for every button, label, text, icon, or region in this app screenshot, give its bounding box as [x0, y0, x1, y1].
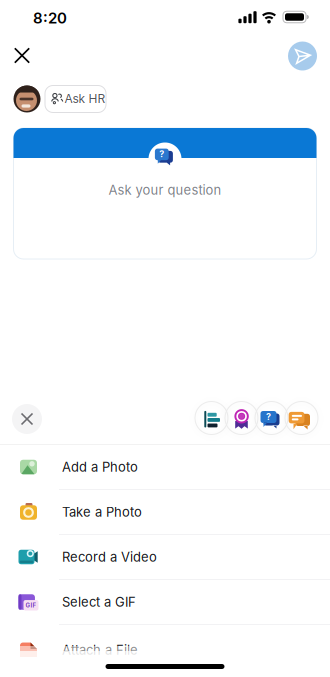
staticText: Take a Photo	[62, 504, 142, 520]
button[interactable]: Ask HR	[45, 85, 106, 112]
button[interactable]: Send	[288, 41, 317, 70]
button[interactable]: Record a Video	[0, 534, 330, 579]
staticText: GIF	[25, 602, 36, 609]
staticText: Ask HR	[64, 92, 105, 106]
staticText: Ask your question	[108, 182, 221, 198]
button[interactable]: Add a Photo	[0, 444, 330, 489]
staticText: ?	[159, 149, 164, 159]
button[interactable]: Ask a question	[255, 401, 288, 434]
button[interactable]: Create a poll	[195, 401, 228, 434]
staticText: Add a Photo	[62, 459, 138, 475]
button[interactable]: Take a Photo	[0, 489, 330, 534]
staticText: Record a Video	[62, 549, 157, 565]
button[interactable]: Close	[0, 33, 44, 77]
staticText: 8:20	[33, 9, 67, 27]
staticText: ?	[266, 411, 271, 422]
staticText: Select a GIF	[62, 594, 136, 610]
button[interactable]: Give an award	[225, 401, 258, 434]
button[interactable]: GIF	[0, 579, 330, 624]
staticText: Attach a File	[62, 642, 138, 658]
button[interactable]: Attach a File	[0, 627, 330, 672]
button[interactable]: Hide attachment options	[12, 404, 42, 434]
button[interactable]: Share an update	[285, 401, 318, 434]
